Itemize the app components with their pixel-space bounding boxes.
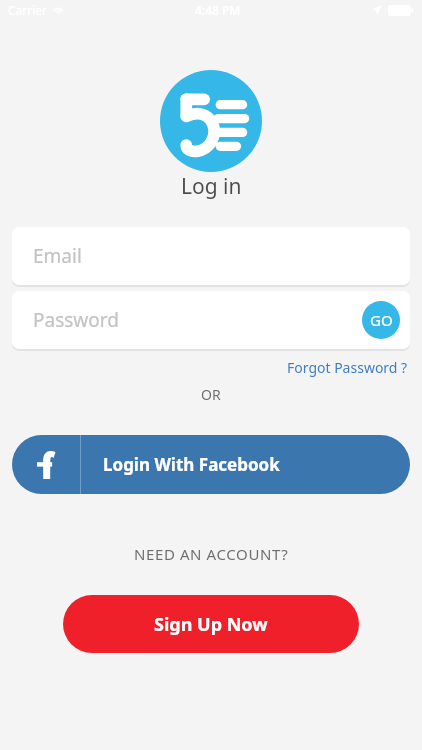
other: App logo: [160, 70, 262, 172]
button[interactable]: Password: [12, 291, 410, 349]
staticText: Password: [33, 307, 119, 333]
button[interactable]: Login With Facebook: [12, 435, 410, 494]
staticText: Email: [33, 243, 82, 269]
staticText: GO: [370, 310, 393, 330]
staticText: NEED AN ACCOUNT?: [134, 544, 289, 564]
button[interactable]: Go: [362, 301, 400, 339]
button[interactable]: Forgot Password ?: [285, 355, 410, 380]
staticText: Login With Facebook: [103, 453, 280, 476]
staticText: Sign Up Now: [154, 612, 268, 637]
staticText: Forgot Password ?: [287, 358, 408, 377]
staticText: Carrier: [8, 2, 48, 18]
staticText: Log in: [181, 172, 242, 201]
button[interactable]: Sign Up Now: [63, 595, 359, 653]
staticText: 4:48 PM: [195, 2, 241, 18]
button[interactable]: Email: [12, 227, 410, 285]
staticText: OR: [201, 385, 221, 404]
